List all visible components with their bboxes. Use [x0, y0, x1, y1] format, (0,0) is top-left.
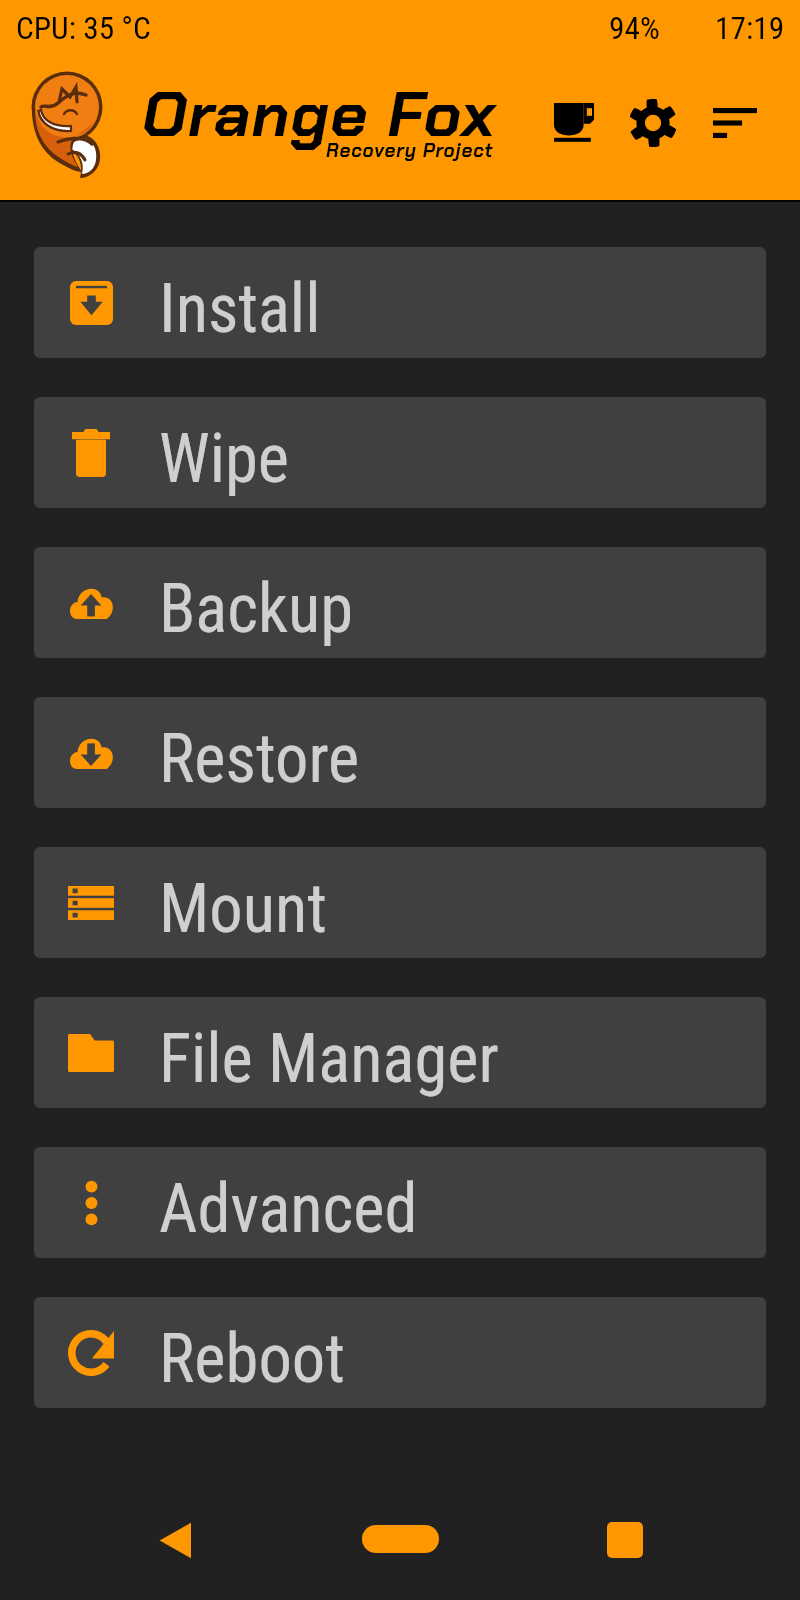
staticText: Install	[159, 268, 321, 349]
button[interactable]: Install	[34, 247, 766, 358]
button[interactable]: Console	[543, 92, 605, 154]
staticText: 94%	[609, 10, 660, 46]
staticText: CPU: 35 °C	[16, 10, 151, 46]
button[interactable]: File Manager	[34, 997, 766, 1108]
button[interactable]: Settings	[622, 92, 684, 154]
button[interactable]: Reboot	[34, 1297, 766, 1408]
staticText: Mount	[159, 868, 327, 949]
button[interactable]: Restore	[34, 697, 766, 808]
button[interactable]: Mount	[34, 847, 766, 958]
button[interactable]: Advanced	[34, 1147, 766, 1258]
staticText: Advanced	[159, 1168, 418, 1249]
staticText: Reboot	[159, 1318, 345, 1399]
button[interactable]: Back	[115, 1440, 235, 1600]
staticText: Orange Fox	[142, 74, 497, 155]
staticText: Recovery Project	[326, 137, 493, 163]
staticText: File Manager	[159, 1018, 500, 1099]
button[interactable]: Backup	[34, 547, 766, 658]
button[interactable]: Wipe	[34, 397, 766, 508]
staticText: Wipe	[159, 418, 289, 499]
button[interactable]: Menu	[704, 92, 766, 154]
staticText: 17:19	[715, 10, 785, 46]
button[interactable]: Recents	[565, 1440, 685, 1600]
button[interactable]: Home	[340, 1440, 460, 1600]
staticText: Backup	[159, 568, 354, 649]
staticText: Restore	[159, 718, 360, 799]
